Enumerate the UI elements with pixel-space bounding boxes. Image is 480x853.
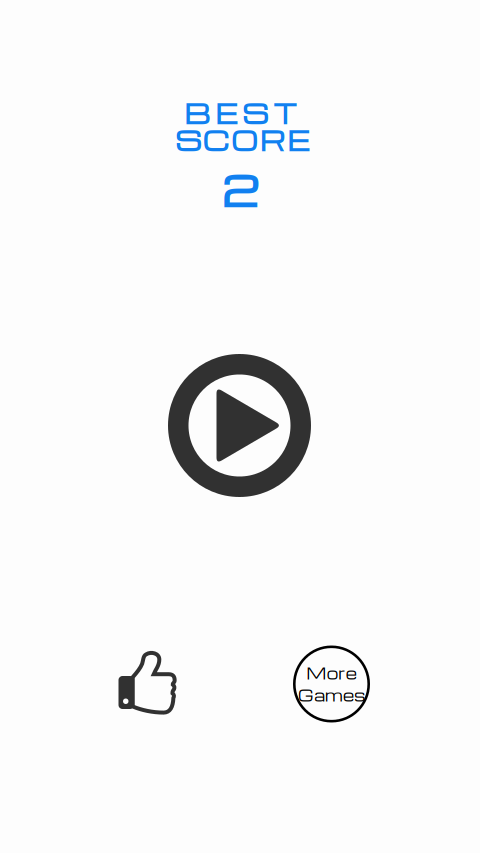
- staticText: C: [202, 122, 229, 158]
- staticText: S: [175, 122, 201, 158]
- staticText: M: [306, 663, 326, 683]
- staticText: e: [346, 663, 357, 683]
- staticText: m: [325, 684, 343, 705]
- staticText: O: [231, 122, 258, 158]
- staticText: G: [298, 684, 314, 705]
- staticText: s: [354, 684, 365, 705]
- staticText: e: [343, 684, 354, 705]
- button[interactable]: More Games: [286, 639, 376, 729]
- staticText: R: [259, 122, 285, 158]
- staticText: a: [314, 684, 325, 705]
- staticText: T: [273, 95, 297, 131]
- staticText: r: [338, 663, 345, 683]
- staticText: B: [184, 95, 210, 131]
- button[interactable]: Play: [168, 354, 311, 497]
- staticText: S: [242, 95, 268, 131]
- staticText: E: [215, 95, 237, 131]
- button[interactable]: Like: [105, 641, 189, 725]
- staticText: o: [327, 663, 338, 683]
- staticText: 2: [221, 161, 259, 218]
- staticText: E: [287, 122, 309, 158]
